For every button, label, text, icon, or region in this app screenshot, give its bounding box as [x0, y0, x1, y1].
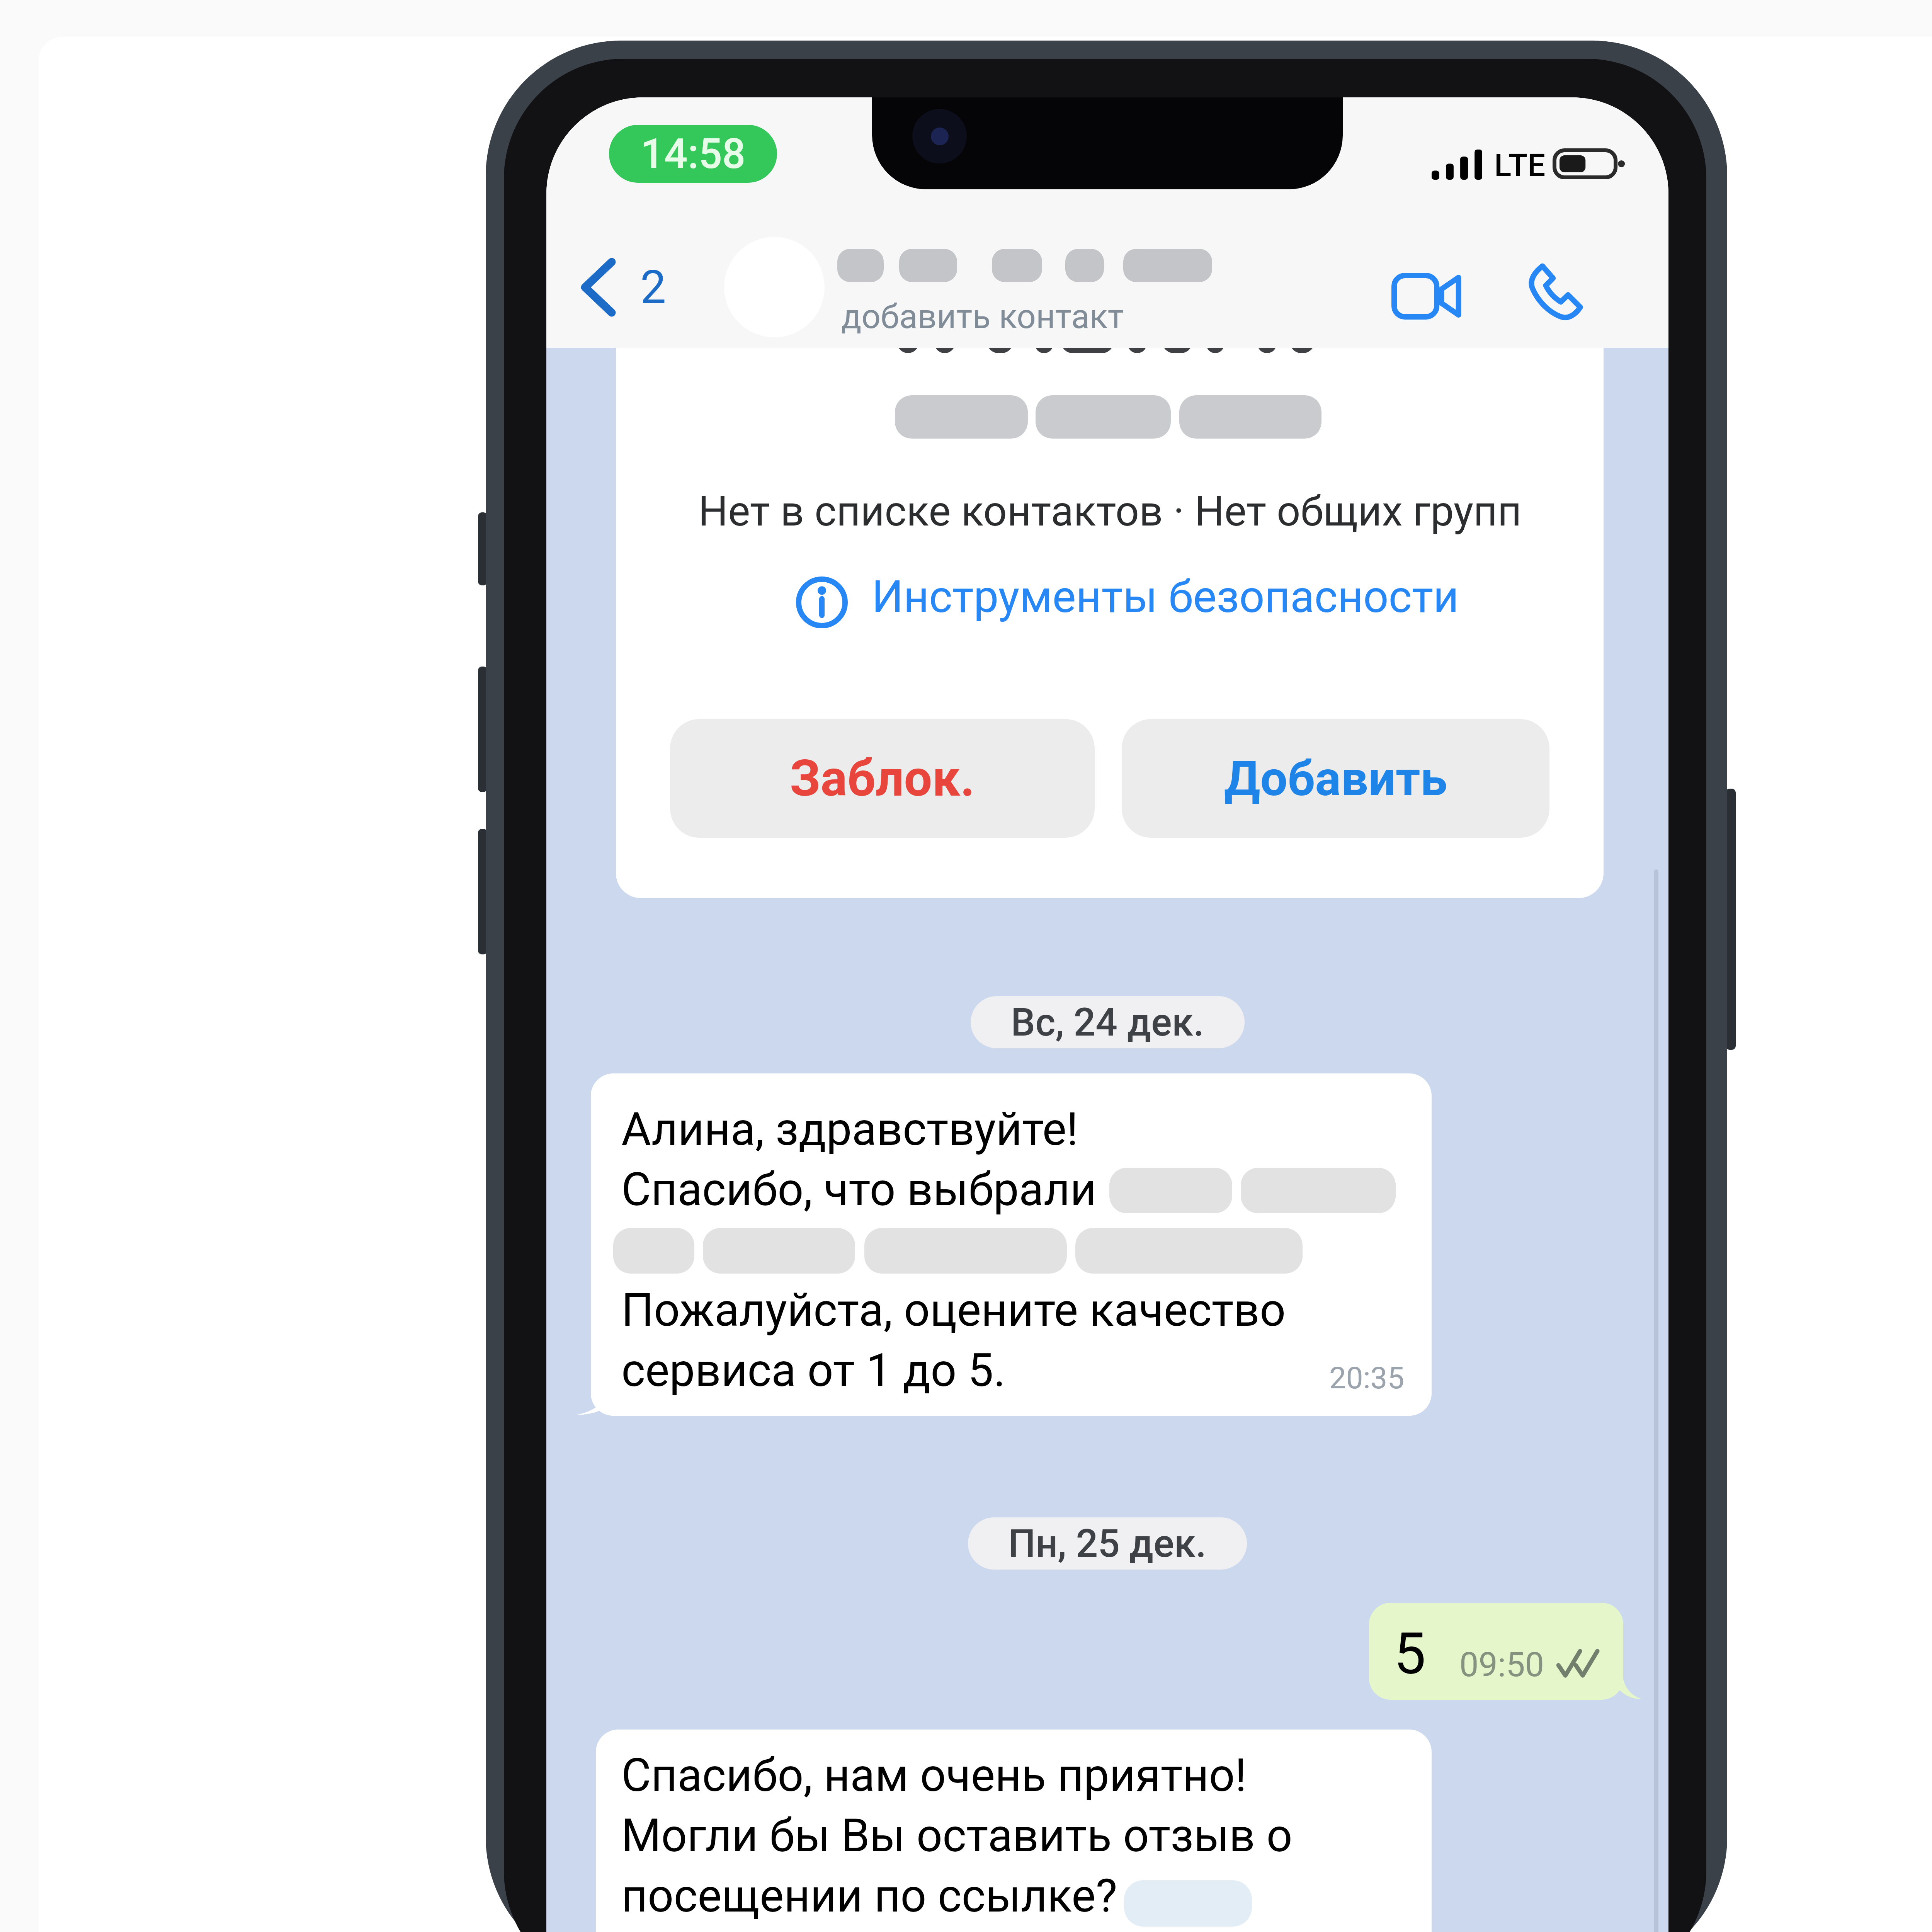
staticText: посещении по ссылке?: [621, 1869, 1117, 1923]
staticText: Добавить: [1224, 750, 1447, 807]
staticText: 5: [1394, 1621, 1426, 1687]
staticText: Вс, 24 дек.: [1011, 1000, 1204, 1045]
staticText: Инструменты безопасности: [872, 571, 1459, 623]
staticText: Алина, здравствуйте!: [621, 1103, 1078, 1156]
staticText: Спасибо, нам очень приятно!: [621, 1749, 1247, 1802]
staticText: добавить контакт: [841, 297, 1124, 336]
staticText: 2: [640, 260, 666, 314]
staticText: Пн, 25 дек.: [1008, 1521, 1207, 1566]
staticText: Могли бы Вы оставить отзыв о: [621, 1809, 1293, 1862]
staticText: Пожалуйста, оцените качество: [621, 1284, 1286, 1337]
button[interactable]: Back: [566, 246, 644, 329]
staticText: 14:58: [641, 130, 746, 178]
button[interactable]: Call: [1497, 233, 1613, 349]
button[interactable]: [786, 564, 1467, 640]
staticText: Заблок.: [790, 749, 975, 808]
staticText: Нет в списке контактов · Нет общих групп: [698, 487, 1522, 536]
button[interactable]: Заблок.: [670, 719, 1095, 838]
button[interactable]: Video call: [1368, 238, 1484, 354]
staticText: LTE: [1494, 147, 1546, 184]
button[interactable]: Добавить: [1122, 719, 1549, 838]
staticText: 09:50: [1459, 1645, 1544, 1684]
staticText: 20:35: [1329, 1361, 1405, 1396]
staticText: Спасибо, что выбрали: [621, 1163, 1097, 1216]
staticText: сервиса от 1 до 5.: [621, 1344, 1006, 1397]
